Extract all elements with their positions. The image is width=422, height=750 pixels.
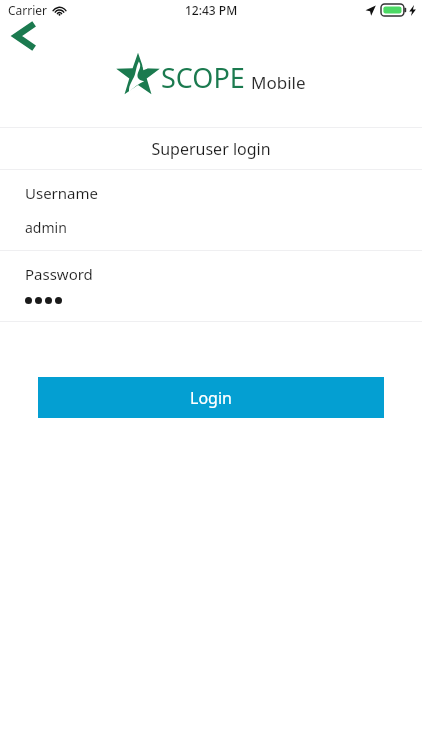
button[interactable]: Back	[2, 18, 48, 56]
staticText: Username	[25, 183, 98, 203]
button[interactable]: Username	[0, 170, 422, 250]
staticText: admin	[25, 218, 67, 237]
staticText: Superuser login	[151, 138, 271, 160]
staticText: 12:43 PM	[185, 2, 238, 18]
staticText: Carrier	[8, 2, 48, 18]
staticText: Password	[25, 264, 93, 284]
button[interactable]: Login	[38, 377, 384, 418]
staticText: Mobile	[251, 71, 306, 94]
staticText: Login	[190, 387, 232, 409]
button[interactable]: Password	[0, 251, 422, 321]
staticText: SCOPE	[161, 59, 245, 96]
